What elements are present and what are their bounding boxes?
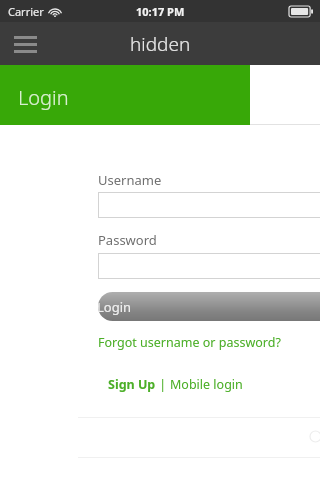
staticText: Login	[98, 298, 132, 316]
staticText: Username	[98, 171, 162, 189]
button[interactable]: Sign Up	[108, 376, 156, 393]
button[interactable]: Login	[98, 292, 320, 321]
button[interactable]: Forgot username or password?	[98, 334, 281, 351]
staticText: Sign Up	[108, 376, 156, 393]
button[interactable]: Mobile login	[170, 376, 243, 393]
staticText: |	[156, 376, 170, 393]
staticText: Forgot username or password?	[98, 334, 281, 351]
staticText: Login	[18, 84, 69, 111]
button[interactable]: Username field	[98, 192, 320, 218]
staticText: 10:17 PM	[136, 4, 185, 19]
staticText: Carrier	[8, 4, 44, 19]
button[interactable]: Password field	[98, 253, 320, 279]
button[interactable]: Menu	[6, 27, 44, 61]
staticText: Mobile login	[170, 376, 243, 393]
staticText: hidden	[130, 31, 191, 57]
staticText: Password	[98, 231, 157, 249]
